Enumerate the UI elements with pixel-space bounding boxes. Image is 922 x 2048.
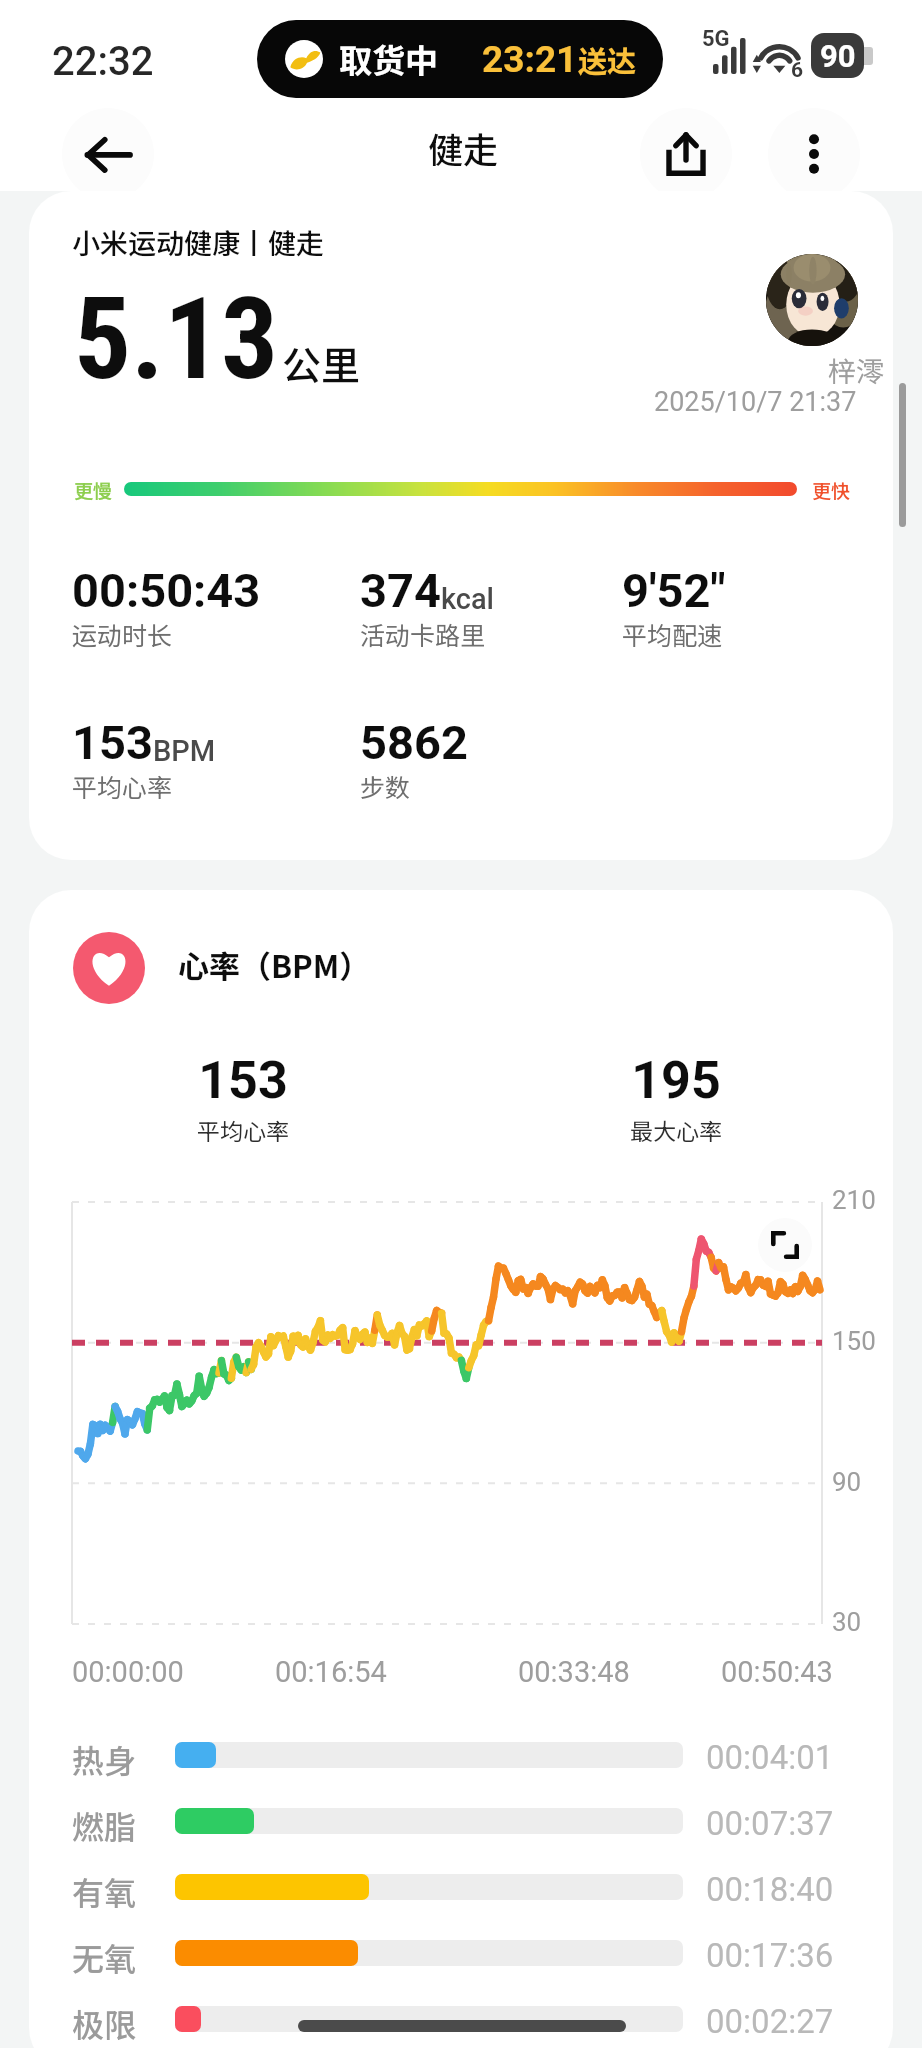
staticText: 5G <box>702 26 730 52</box>
staticText: 更快 <box>812 476 851 504</box>
staticText: 有氧 <box>72 1868 137 1914</box>
staticText: 燃脂 <box>72 1802 137 1848</box>
staticText: 极限 <box>72 2000 137 2046</box>
staticText: 90 <box>832 1467 862 1497</box>
staticText: 210 <box>832 1185 876 1215</box>
button[interactable]: Expand chart <box>758 1218 812 1272</box>
staticText: 195 <box>546 1050 806 1111</box>
staticText: 运动时长 <box>72 616 173 652</box>
staticText: 00:16:54 <box>275 1655 387 1689</box>
button[interactable]: Profile <box>766 254 858 346</box>
staticText: 6 <box>791 58 804 83</box>
staticText: 取货中 <box>339 35 438 83</box>
staticText: 153 <box>72 715 153 770</box>
staticText: 153 <box>113 1050 373 1111</box>
staticText: 00:33:48 <box>518 1655 630 1689</box>
staticText: 00:18:40 <box>706 1870 834 1909</box>
staticText: kcal <box>441 582 495 616</box>
staticText: 00:00:00 <box>72 1655 184 1689</box>
staticText: 平均配速 <box>622 616 723 652</box>
staticText: 22:32 <box>52 38 154 85</box>
staticText: 00:02:27 <box>706 2002 834 2041</box>
staticText: 平均心率 <box>113 1113 373 1146</box>
staticText: 00:50:43 <box>72 563 261 618</box>
staticText: 5.13 <box>74 273 279 405</box>
button[interactable]: Share <box>640 108 732 200</box>
staticText: 90 <box>820 38 856 74</box>
staticText: 公里 <box>282 335 361 391</box>
staticText: 00:17:36 <box>706 1936 834 1975</box>
staticText: 2025/10/7 21:37 <box>654 386 857 418</box>
button[interactable]: 取货中 <box>257 20 663 98</box>
staticText: 150 <box>832 1326 876 1356</box>
staticText: 00:04:01 <box>706 1738 834 1777</box>
button[interactable]: More options <box>768 108 860 200</box>
staticText: 最大心率 <box>546 1113 806 1146</box>
staticText: 送达 <box>578 38 637 80</box>
staticText: 平均心率 <box>72 768 173 804</box>
staticText: 374 <box>360 563 441 618</box>
staticText: 00:07:37 <box>706 1804 834 1843</box>
staticText: 9'52" <box>622 563 726 618</box>
staticText: 梓澪 <box>828 350 885 391</box>
staticText: BPM <box>153 734 216 768</box>
staticText: 步数 <box>360 768 411 804</box>
staticText: 活动卡路里 <box>360 616 486 652</box>
staticText: 5862 <box>360 715 468 770</box>
staticText: 更慢 <box>74 476 113 504</box>
staticText: 健走 <box>428 122 499 173</box>
staticText: 心率（BPM） <box>178 942 371 987</box>
staticText: 30 <box>832 1607 862 1637</box>
staticText: 00:50:43 <box>721 1655 833 1689</box>
staticText: 23:21 <box>482 38 578 81</box>
staticText: 无氧 <box>72 1934 137 1980</box>
staticText: 热身 <box>72 1736 137 1782</box>
button[interactable]: Back <box>62 108 154 200</box>
staticText: 小米运动健康丨健走 <box>72 222 325 263</box>
